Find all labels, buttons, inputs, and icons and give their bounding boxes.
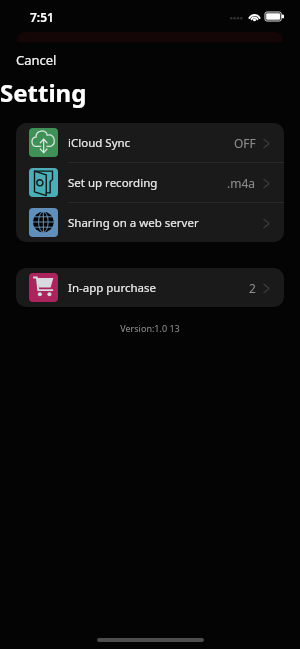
button[interactable]: iCloud Sync	[16, 123, 284, 162]
button[interactable]: In-app purchase	[16, 268, 284, 307]
staticText: Setting	[0, 76, 87, 109]
staticText: iCloud Sync	[68, 135, 131, 151]
staticText: .m4a	[227, 175, 256, 191]
staticText: Version:1.0 13	[0, 322, 300, 334]
button[interactable]: Sharing on a web server	[16, 203, 284, 242]
staticText: 7:51	[30, 9, 54, 25]
staticText: In-app purchase	[68, 280, 157, 296]
button[interactable]: Set up recording	[16, 163, 284, 202]
staticText: Sharing on a web server	[68, 215, 199, 231]
staticText: 2	[249, 280, 256, 296]
staticText: Cancel	[16, 51, 57, 69]
staticText: OFF	[234, 135, 256, 151]
button[interactable]: Cancel	[16, 51, 57, 69]
staticText: Set up recording	[68, 175, 158, 191]
